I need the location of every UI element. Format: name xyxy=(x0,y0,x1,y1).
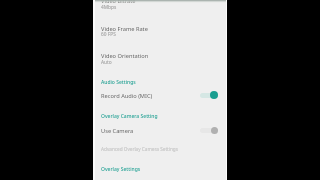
staticText: Use Camera xyxy=(101,127,134,135)
staticText: Overlay Settings xyxy=(101,166,141,173)
staticText: Audio Settings xyxy=(101,79,136,86)
staticText: Record Audio (MIC) xyxy=(101,92,153,100)
staticText: Video Bitrate xyxy=(101,0,136,5)
staticText: Video Orientation xyxy=(101,52,149,60)
staticText: Advanced Overlay Camera Settings xyxy=(101,146,178,152)
staticText: Auto xyxy=(101,59,112,66)
button[interactable]: Video Bitrate xyxy=(93,0,227,16)
button[interactable]: Use Camera xyxy=(93,122,227,137)
button[interactable]: Video Orientation xyxy=(93,49,227,70)
staticText: 4Mbps xyxy=(101,4,117,11)
button[interactable]: Video Frame Rate xyxy=(93,21,227,42)
staticText: Overlay Camera Setting xyxy=(101,113,158,120)
staticText: 60 FPS xyxy=(101,31,116,38)
button[interactable]: Advanced Overlay Camera Settings xyxy=(93,143,227,155)
button[interactable]: Record Audio (MIC) xyxy=(93,88,227,103)
staticText: Video Frame Rate xyxy=(101,25,148,33)
